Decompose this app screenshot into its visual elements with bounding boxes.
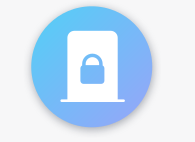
button[interactable]: Secure entry <box>0 0 195 142</box>
